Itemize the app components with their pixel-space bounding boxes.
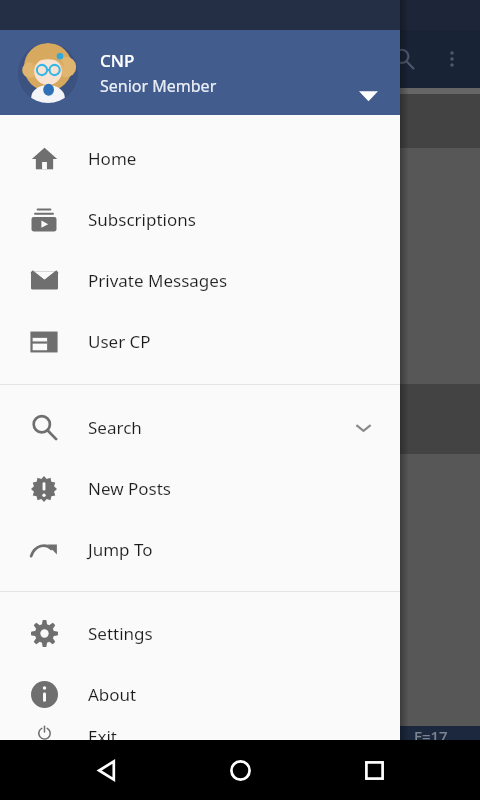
button[interactable]: Search — [0, 397, 400, 458]
staticText: Subscriptions — [88, 208, 196, 231]
staticText: F=17 — [414, 726, 448, 740]
staticText: Search — [88, 416, 142, 439]
staticText: Jump To — [88, 538, 153, 561]
button[interactable]: Exit — [0, 725, 400, 740]
button[interactable]: Subscriptions — [0, 189, 400, 250]
staticText: About — [88, 683, 137, 706]
button[interactable]: User CP — [0, 311, 400, 372]
button[interactable]: Search — [380, 35, 428, 83]
staticText: User CP — [88, 330, 151, 353]
button[interactable]: Recents — [347, 743, 401, 797]
staticText: Exit — [88, 725, 117, 740]
staticText: New Posts — [88, 477, 171, 500]
button[interactable]: Home — [213, 743, 267, 797]
staticText: Senior Member — [100, 75, 217, 97]
button[interactable]: Private Messages — [0, 250, 400, 311]
button[interactable]: Home — [0, 128, 400, 189]
button[interactable]: Back — [80, 743, 134, 797]
button[interactable]: New Posts — [0, 458, 400, 519]
button[interactable]: Settings — [0, 603, 400, 664]
button[interactable]: About — [0, 664, 400, 725]
button[interactable]: CNP — [0, 30, 400, 115]
button[interactable]: Jump To — [0, 519, 400, 580]
staticText: CNP — [100, 49, 135, 72]
button[interactable]: More options — [428, 35, 476, 83]
staticText: Private Messages — [88, 269, 228, 292]
staticText: Home — [88, 147, 137, 170]
staticText: Settings — [88, 622, 153, 645]
